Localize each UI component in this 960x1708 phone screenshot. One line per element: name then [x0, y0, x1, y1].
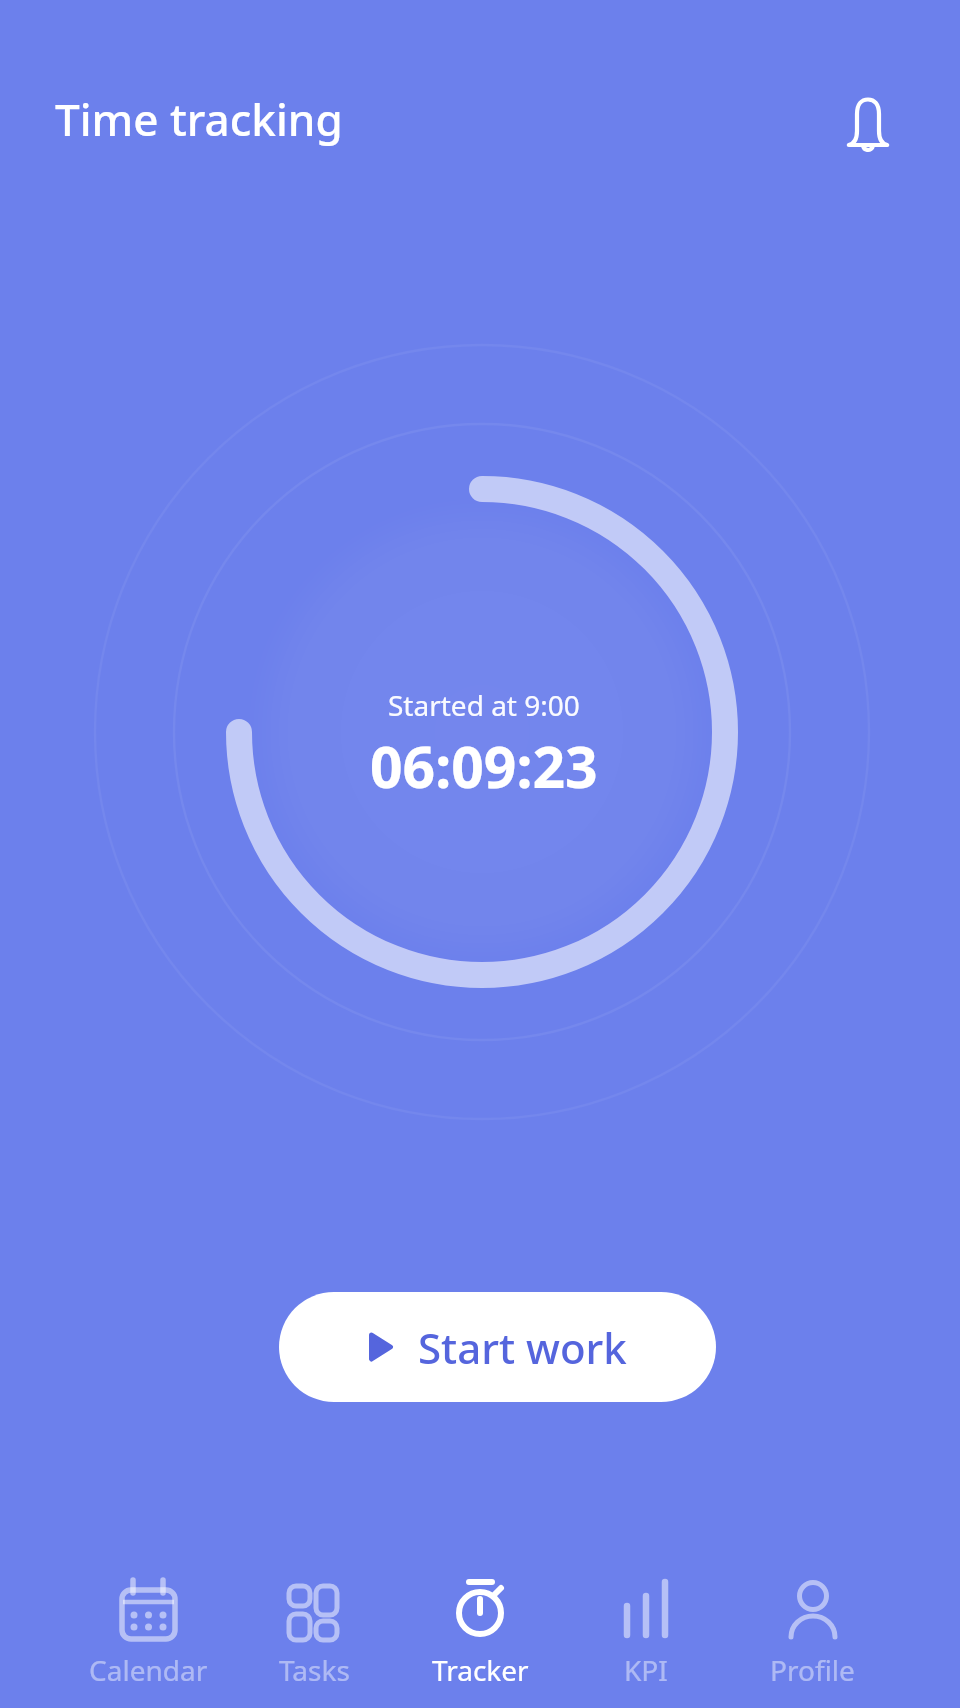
button[interactable]: Profile: [729, 1578, 895, 1689]
staticText: Started at 9:00: [388, 686, 580, 724]
staticText: Start work: [418, 1319, 627, 1376]
staticText: Time tracking: [55, 89, 343, 149]
staticText: 06:09:23: [370, 727, 598, 805]
staticText: Tracker: [432, 1651, 529, 1689]
staticText: Profile: [770, 1651, 855, 1689]
staticText: Calendar: [89, 1651, 208, 1689]
button[interactable]: [846, 96, 890, 150]
button[interactable]: Tracker: [397, 1578, 563, 1689]
button[interactable]: Tasks: [231, 1578, 397, 1689]
staticText: Tasks: [279, 1651, 350, 1689]
button[interactable]: Calendar: [65, 1578, 231, 1689]
button[interactable]: Start work: [279, 1292, 716, 1402]
button[interactable]: KPI: [563, 1578, 729, 1689]
staticText: KPI: [624, 1651, 668, 1689]
